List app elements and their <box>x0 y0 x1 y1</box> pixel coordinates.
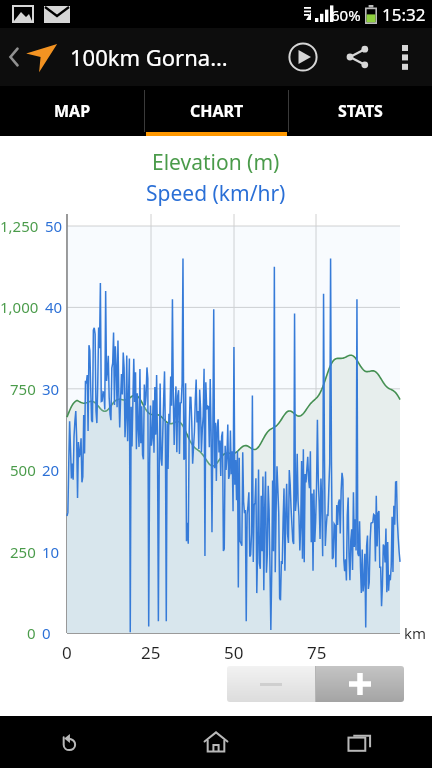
staticText: 0 <box>62 641 72 664</box>
staticText: 1,000 <box>0 297 39 317</box>
staticText: CHART <box>190 100 244 122</box>
staticText: 1,250 <box>0 216 39 236</box>
button[interactable]: CHART <box>145 86 288 136</box>
staticText: km <box>404 623 427 643</box>
staticText: 15:32 <box>382 3 426 26</box>
staticText: 75 <box>307 641 327 664</box>
staticText: 25 <box>141 641 161 664</box>
staticText: 50 <box>45 216 63 236</box>
staticText: MAP <box>54 100 91 122</box>
button[interactable]: Share <box>330 28 384 86</box>
button[interactable]: Back <box>0 716 144 768</box>
staticText: 30 <box>42 379 60 399</box>
button[interactable]: MAP <box>0 86 144 136</box>
other: Track icon <box>24 40 60 74</box>
button[interactable]: Back <box>0 40 64 74</box>
staticText: 40 <box>45 297 63 317</box>
staticText: 500 <box>10 460 36 480</box>
button[interactable]: Zoom in <box>316 666 404 702</box>
button[interactable]: Recent apps <box>288 716 432 768</box>
staticText: 0 <box>27 623 36 643</box>
staticText: 60% <box>331 5 361 25</box>
staticText: STATS <box>338 100 383 122</box>
staticText: 750 <box>10 379 36 399</box>
staticText: 20 <box>42 460 60 480</box>
button[interactable]: STATS <box>289 86 432 136</box>
staticText: Elevation (m) <box>152 148 280 177</box>
staticText: Speed (km/hr) <box>146 179 286 208</box>
staticText: 0 <box>42 623 51 643</box>
staticText: 50 <box>224 641 244 664</box>
other: Back <box>6 44 22 70</box>
button[interactable]: More options <box>384 28 426 86</box>
button[interactable]: Zoom out <box>227 666 315 702</box>
button[interactable]: Home <box>144 716 288 768</box>
staticText: 100km Gorna… <box>70 42 228 72</box>
staticText: 250 <box>10 542 36 562</box>
button[interactable]: Play <box>276 28 330 86</box>
staticText: 10 <box>42 542 60 562</box>
